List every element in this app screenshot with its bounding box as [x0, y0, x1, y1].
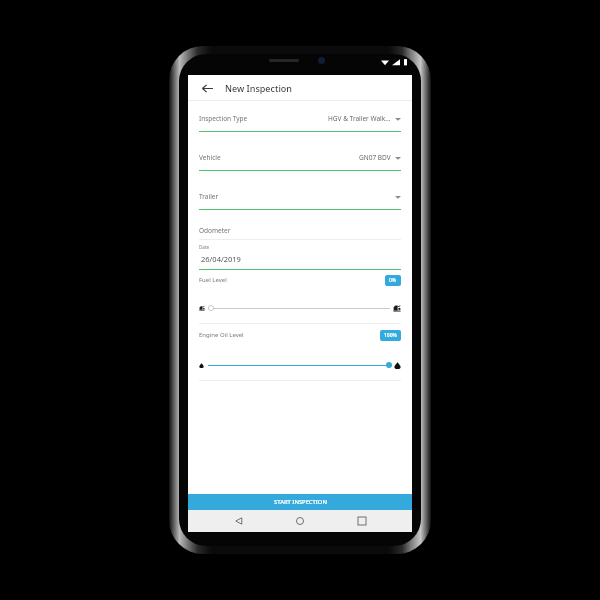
staticText: Date	[199, 244, 210, 250]
button[interactable]: Odometer	[188, 218, 412, 240]
button[interactable]: Engine oil level slider	[386, 362, 392, 368]
button[interactable]: Home	[289, 510, 311, 532]
button[interactable]: Fuel level slider	[208, 305, 214, 311]
staticText: Odometer	[199, 226, 231, 235]
staticText: 26/04/2019	[201, 254, 241, 264]
button[interactable]: Vehicle	[188, 140, 412, 179]
button[interactable]: 100%	[380, 330, 401, 341]
staticText: START INSPECTION	[274, 498, 327, 506]
button[interactable]: START INSPECTION	[188, 494, 412, 510]
button[interactable]: Recent apps	[351, 510, 373, 532]
button[interactable]: Inspection Type	[188, 101, 412, 140]
staticText: HGV & Trailer Walk...	[328, 114, 391, 123]
button[interactable]: Back	[228, 510, 250, 532]
staticText: 0%	[389, 277, 397, 284]
staticText: Engine Oil Level	[199, 331, 244, 339]
staticText: New Inspection	[225, 82, 292, 94]
button[interactable]: Date	[188, 240, 412, 273]
button[interactable]: Trailer	[188, 179, 412, 218]
staticText: GN07 BDV	[359, 153, 391, 162]
button[interactable]: Back	[197, 78, 217, 98]
staticText: Fuel Level	[199, 276, 227, 284]
staticText: 100%	[384, 332, 397, 339]
staticText: Trailer	[199, 192, 219, 201]
button[interactable]: 0%	[385, 275, 401, 286]
staticText: Inspection Type	[199, 114, 248, 123]
staticText: Vehicle	[199, 153, 221, 162]
